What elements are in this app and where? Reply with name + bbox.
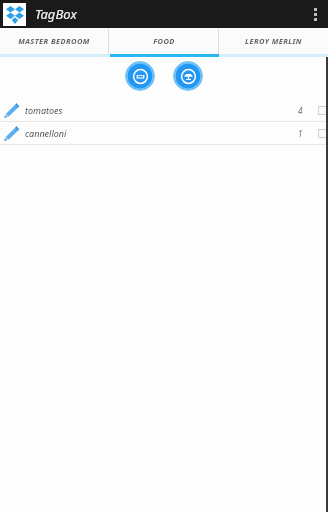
staticText: tomatoes (25, 104, 298, 116)
staticText: FOOD (153, 36, 175, 46)
staticText: 4 (298, 105, 303, 116)
button[interactable]: Take photo (125, 61, 155, 91)
button[interactable]: FOOD (109, 28, 218, 54)
button[interactable]: tomatoes (0, 99, 328, 121)
button[interactable]: Add item (173, 61, 203, 91)
button[interactable]: Select tomatoes (318, 106, 327, 115)
staticText: 1 (298, 128, 303, 139)
button[interactable]: More options (302, 1, 328, 27)
staticText: LEROY MERLIN (245, 36, 302, 46)
staticText: cannelloni (25, 127, 298, 139)
button[interactable]: LEROY MERLIN (219, 28, 328, 54)
button[interactable]: cannelloni (0, 122, 328, 144)
button[interactable]: MASTER BEDROOM (0, 28, 108, 54)
staticText: TagBox (35, 5, 77, 23)
button[interactable]: Select cannelloni (318, 129, 327, 138)
staticText: MASTER BEDROOM (18, 36, 90, 46)
